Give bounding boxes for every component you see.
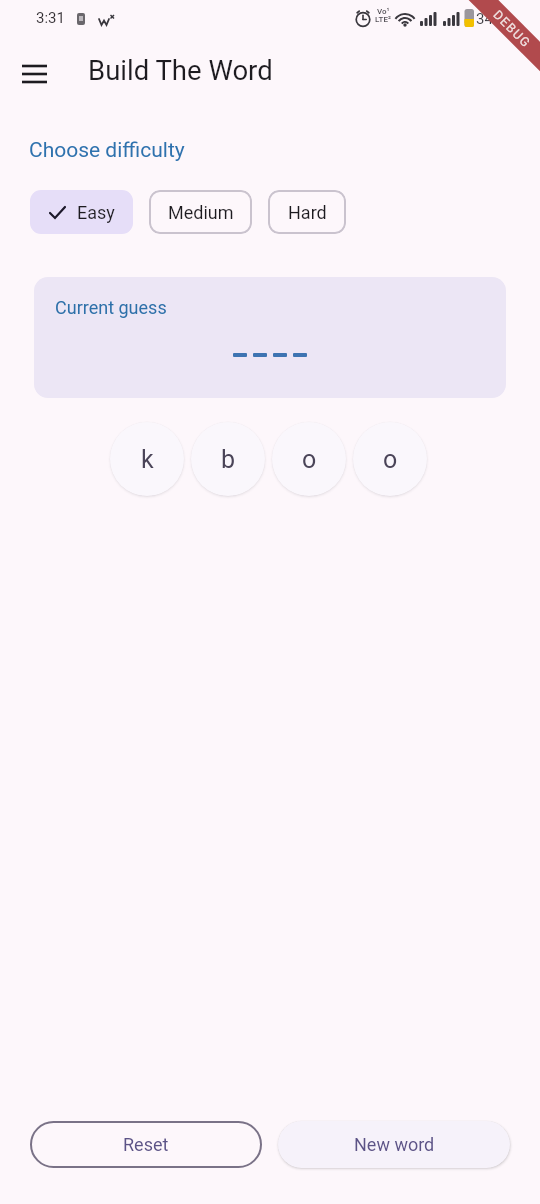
staticText: k — [141, 445, 154, 474]
button[interactable]: New word — [278, 1121, 510, 1168]
staticText: Current guess — [55, 297, 167, 318]
button[interactable]: b — [191, 422, 265, 496]
staticText: Hard — [288, 202, 327, 223]
staticText: Vo¹ — [377, 7, 390, 16]
staticText: o — [302, 445, 317, 474]
staticText: o — [383, 445, 398, 474]
staticText: Choose difficulty — [29, 138, 185, 163]
button[interactable] — [12, 54, 56, 94]
staticText: DEBUG — [490, 7, 534, 51]
button[interactable]: Medium — [149, 190, 252, 234]
staticText: b — [221, 445, 236, 474]
staticText: New word — [354, 1134, 435, 1155]
button[interactable]: Reset — [30, 1121, 262, 1168]
staticText: Easy — [77, 202, 115, 223]
button[interactable]: k — [110, 422, 184, 496]
staticText: 34% — [476, 10, 504, 28]
staticText: 3:31 — [36, 9, 65, 27]
staticText: LTE² — [375, 15, 391, 24]
staticText: Medium — [168, 202, 234, 223]
button[interactable]: Easy — [30, 190, 133, 234]
staticText: Reset — [123, 1134, 169, 1155]
button[interactable]: o — [272, 422, 346, 496]
button[interactable]: o — [353, 422, 427, 496]
button[interactable]: Hard — [268, 190, 346, 234]
staticText: Build The Word — [88, 54, 273, 86]
